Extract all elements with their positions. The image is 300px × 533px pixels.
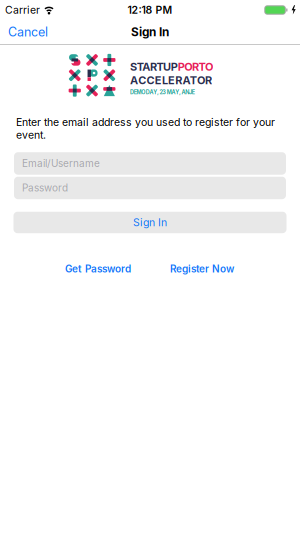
staticText: ACCELERATOR [130,73,212,87]
staticText: STARTUP [130,60,178,73]
staticText: Email/Username [22,157,100,169]
button[interactable]: Cancel [8,24,48,39]
staticText: 12:18 PM [127,4,172,16]
staticText: Cancel [8,24,48,39]
staticText: Enter the email address you used to regi… [16,116,275,141]
button[interactable]: Get Password [46,263,150,275]
staticText: Carrier [5,4,40,16]
staticText: PORTO [178,60,213,73]
button[interactable]: Register Now [150,263,254,275]
staticText: Register Now [170,263,234,275]
staticText: Sign In [133,216,167,229]
staticText: Get Password [65,263,131,275]
button[interactable]: Email/Username [14,152,286,175]
staticText: DEMO DAY, 23 MAY, ANJE [130,89,195,95]
button[interactable]: Password [14,177,286,199]
staticText: Password [22,182,68,194]
button[interactable]: Sign In [13,212,286,233]
staticText: Sign In [131,25,169,39]
